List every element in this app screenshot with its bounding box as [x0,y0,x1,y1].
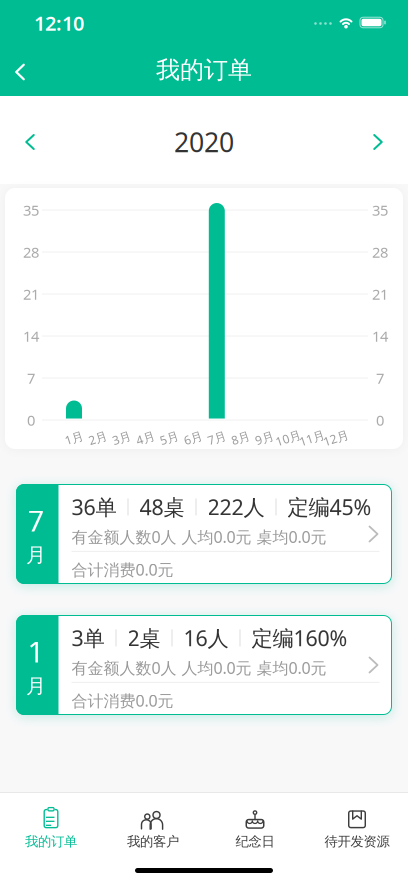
staticText: 0 [27,410,35,430]
staticText: 我的订单 [25,833,77,850]
staticText: 7 [376,368,384,388]
staticText: 35 [23,200,39,220]
staticText: 7 [27,501,44,540]
staticText: 48桌 [139,493,184,521]
staticText: 0 [376,410,384,430]
staticText: 定编45% [287,493,371,521]
button[interactable]: 纪念日 [204,792,306,852]
staticText: 10月 [275,430,301,446]
staticText: 12:10 [34,10,84,36]
staticText: 3单 [71,624,104,652]
staticText: 纪念日 [235,833,274,850]
button[interactable]: 7 [16,484,392,584]
staticText: 28 [23,242,39,262]
staticText: 月 [26,543,46,567]
staticText: 2020 [174,124,234,160]
staticText: 合计消费0.0元 [71,559,173,580]
staticText: 我的订单 [156,55,252,85]
staticText: 2桌 [127,624,160,652]
staticText: 21 [372,284,388,304]
button[interactable]: 我的订单 [0,792,102,852]
button[interactable]: Back [0,50,42,94]
staticText: 11月 [299,430,325,446]
staticText: 5月 [160,430,179,446]
staticText: 7 [27,368,35,388]
staticText: 1 [27,632,44,671]
staticText: 12月 [323,430,349,446]
staticText: 14 [372,326,388,346]
staticText: 3月 [112,430,131,446]
staticText: 35 [372,200,388,220]
staticText: 9月 [255,430,274,446]
staticText: 月 [26,674,46,698]
staticText: 合计消费0.0元 [71,690,173,711]
staticText: 14 [23,326,39,346]
staticText: 1月 [64,430,83,446]
button[interactable]: 1 [16,615,392,715]
staticText: 我的客户 [127,833,179,850]
staticText: 16人 [183,624,228,652]
button[interactable]: 我的客户 [102,792,204,852]
staticText: 36单 [71,493,116,521]
staticText: 4月 [136,430,155,446]
staticText: 6月 [183,430,202,446]
staticText: 21 [23,284,39,304]
staticText: 28 [372,242,388,262]
button[interactable]: Previous year [8,120,52,164]
staticText: 8月 [231,430,250,446]
staticText: 有金额人数0人 人均0.0元 桌均0.0元 [71,657,326,678]
staticText: 222人 [207,493,264,521]
button[interactable]: Next year [356,120,400,164]
staticText: 2月 [88,430,107,446]
staticText: 待开发资源 [324,833,389,850]
staticText: 定编160% [251,624,347,652]
staticText: 有金额人数0人 人均0.0元 桌均0.0元 [71,526,326,547]
staticText: 7月 [207,430,226,446]
button[interactable]: 待开发资源 [306,792,408,852]
